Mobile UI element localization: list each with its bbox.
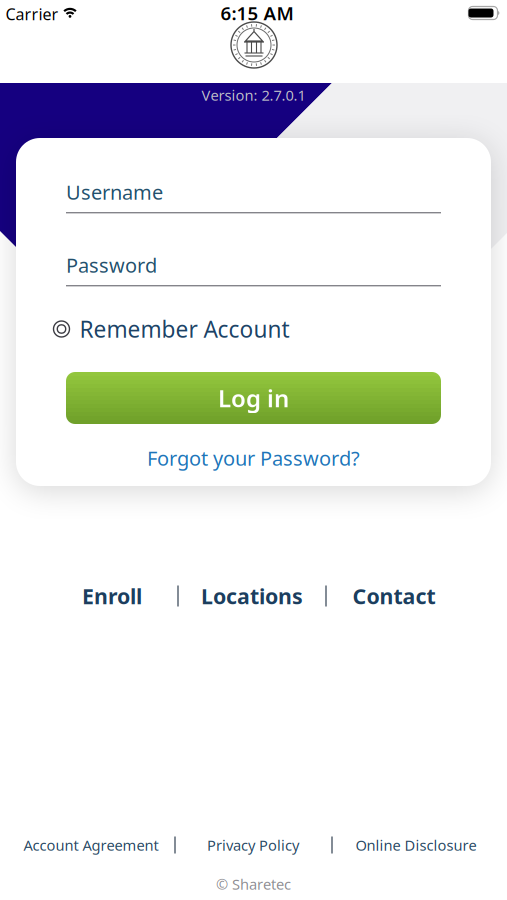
staticText: Contact <box>352 582 435 610</box>
button[interactable]: Username <box>66 179 441 213</box>
button[interactable]: Forgot your Password? <box>147 445 360 471</box>
button[interactable]: Locations <box>201 582 303 610</box>
button[interactable]: Enroll <box>82 582 142 610</box>
staticText: © Sharetec <box>216 874 291 894</box>
button[interactable]: Contact <box>352 582 435 610</box>
staticText: Username <box>66 179 163 205</box>
staticText: Password <box>66 252 157 278</box>
button[interactable]: Online Disclosure <box>355 835 476 855</box>
staticText: Locations <box>201 582 303 610</box>
staticText: Online Disclosure <box>355 835 476 855</box>
button[interactable]: Remember Account <box>52 314 289 344</box>
button[interactable]: Account Agreement <box>23 835 158 855</box>
button[interactable]: Privacy Policy <box>207 835 299 855</box>
staticText: Privacy Policy <box>207 835 299 855</box>
staticText: Account Agreement <box>23 835 158 855</box>
staticText: Version: 2.7.0.1 <box>201 85 305 105</box>
button[interactable]: Log in <box>66 372 441 424</box>
staticText: Enroll <box>82 582 142 610</box>
staticText: Remember Account <box>79 314 289 344</box>
staticText: 6:15 AM <box>220 1 293 25</box>
button[interactable]: Password <box>66 252 441 286</box>
staticText: Forgot your Password? <box>147 445 360 471</box>
staticText: Carrier <box>5 3 58 25</box>
staticText: Log in <box>218 382 289 414</box>
